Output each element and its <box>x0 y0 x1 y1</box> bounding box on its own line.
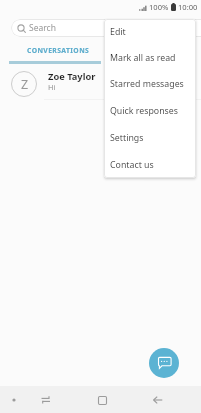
staticText: Contact us <box>110 159 154 171</box>
button[interactable]: Edit <box>104 19 196 45</box>
button[interactable]: Home <box>92 390 113 411</box>
staticText: Z <box>21 76 29 93</box>
button[interactable]: Settings <box>104 124 196 151</box>
staticText: Mark all as read <box>110 52 176 64</box>
button[interactable]: New conversation <box>149 348 179 378</box>
button[interactable]: Contact us <box>104 151 196 178</box>
staticText: 10:00 <box>178 2 198 12</box>
staticText: 100% <box>149 2 169 12</box>
button[interactable]: Z <box>0 66 201 100</box>
staticText: Starred messages <box>110 78 184 90</box>
button[interactable]: Back <box>147 389 168 410</box>
button[interactable]: CONVERSATIONS <box>9 40 101 64</box>
button[interactable]: Menu <box>3 389 24 410</box>
button[interactable]: Quick responses <box>104 97 196 124</box>
staticText: Zoe Taylor <box>48 70 96 83</box>
button[interactable]: Mark all as read <box>104 45 196 71</box>
staticText: Settings <box>110 132 144 144</box>
button[interactable]: Search <box>11 19 201 37</box>
button[interactable]: Starred messages <box>104 71 196 97</box>
staticText: Edit <box>110 26 126 38</box>
staticText: Quick responses <box>110 105 178 117</box>
staticText: CONVERSATIONS <box>27 46 90 55</box>
staticText: Search <box>29 22 56 34</box>
button[interactable]: Recent apps <box>35 389 56 410</box>
staticText: Hi <box>48 82 56 92</box>
